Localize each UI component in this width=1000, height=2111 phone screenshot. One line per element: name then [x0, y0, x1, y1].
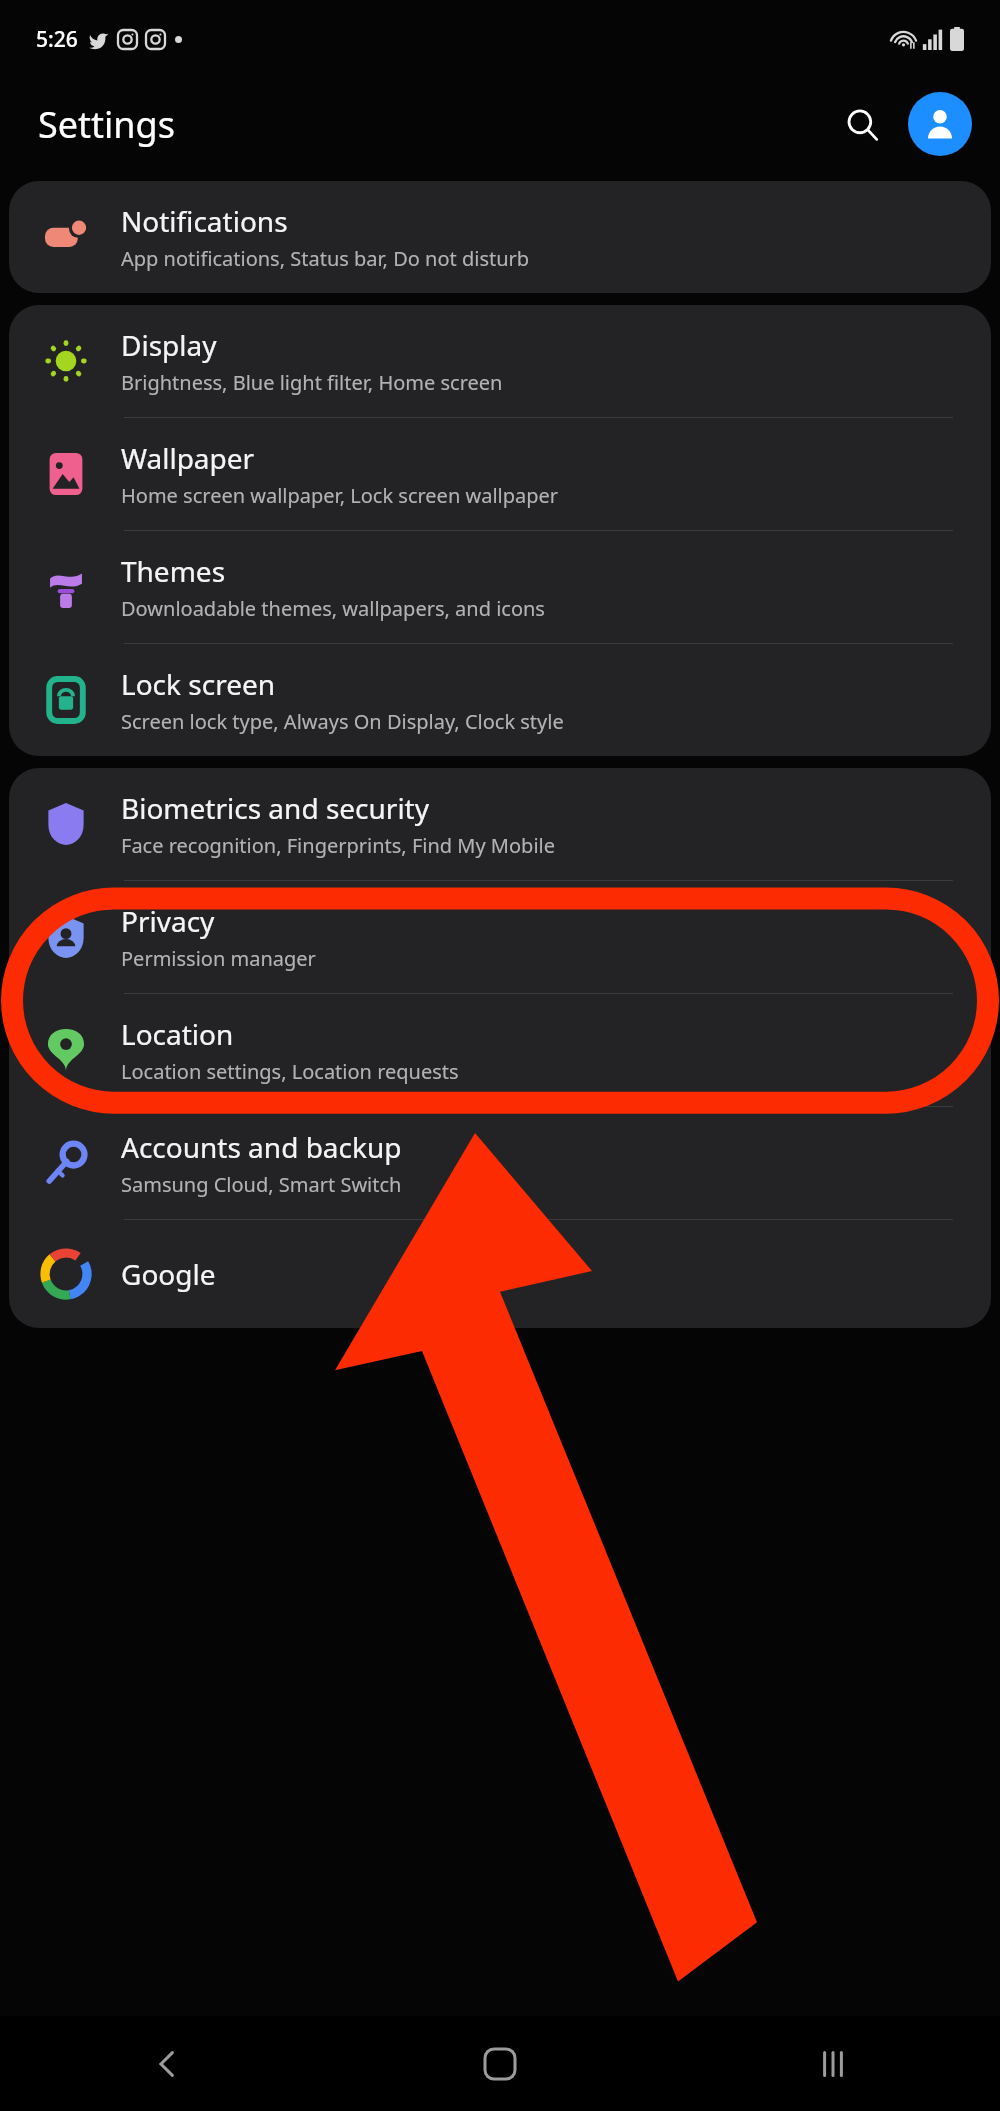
staticText: Location: [121, 1015, 234, 1053]
staticText: Wallpaper: [121, 439, 255, 477]
button[interactable]: Display: [9, 305, 991, 417]
staticText: Face recognition, Fingerprints, Find My …: [121, 832, 555, 859]
button[interactable]: Back: [122, 2019, 212, 2109]
staticText: Location settings, Location requests: [121, 1058, 459, 1085]
staticText: App notifications, Status bar, Do not di…: [121, 245, 530, 272]
staticText: Brightness, Blue light filter, Home scre…: [121, 369, 503, 396]
button[interactable]: Search: [830, 92, 894, 156]
staticText: Permission manager: [121, 945, 316, 972]
staticText: Accounts and backup: [121, 1128, 402, 1166]
button[interactable]: Home: [455, 2019, 545, 2109]
button[interactable]: Lock screen: [9, 644, 991, 756]
staticText: Display: [121, 326, 217, 364]
button[interactable]: Privacy: [9, 881, 991, 993]
staticText: Settings: [38, 100, 175, 149]
staticText: Home screen wallpaper, Lock screen wallp…: [121, 482, 559, 509]
button[interactable]: Accounts and backup: [9, 1107, 991, 1219]
staticText: Samsung Cloud, Smart Switch: [121, 1171, 402, 1198]
button[interactable]: Google: [9, 1220, 991, 1328]
staticText: Google: [121, 1255, 216, 1293]
staticText: Themes: [121, 552, 226, 590]
staticText: Downloadable themes, wallpapers, and ico…: [121, 595, 545, 622]
button[interactable]: Location: [9, 994, 991, 1106]
button[interactable]: Themes: [9, 531, 991, 643]
staticText: Biometrics and security: [121, 789, 430, 827]
staticText: Screen lock type, Always On Display, Clo…: [121, 708, 564, 735]
button[interactable]: Notifications: [9, 181, 991, 293]
staticText: Privacy: [121, 902, 215, 940]
button[interactable]: Biometrics and security: [9, 768, 991, 880]
staticText: 5:26: [36, 25, 78, 54]
staticText: Lock screen: [121, 665, 276, 703]
button[interactable]: Recents: [788, 2019, 878, 2109]
staticText: Notifications: [121, 202, 288, 240]
button[interactable]: Account: [908, 92, 972, 156]
button[interactable]: Wallpaper: [9, 418, 991, 530]
